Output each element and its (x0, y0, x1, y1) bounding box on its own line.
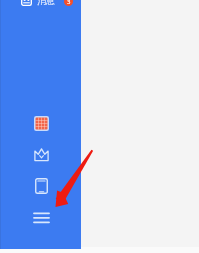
staticText: 消息 (37, 0, 55, 6)
button[interactable]: Device (35, 178, 48, 194)
button[interactable]: Unread count (64, 0, 73, 6)
button[interactable]: VIP (34, 148, 49, 162)
button[interactable]: Menu (34, 212, 49, 224)
staticText: 3 (67, 0, 71, 6)
button[interactable]: Calendar (34, 116, 49, 131)
button[interactable]: Messages (21, 0, 32, 6)
button[interactable]: 消息 (37, 0, 55, 6)
